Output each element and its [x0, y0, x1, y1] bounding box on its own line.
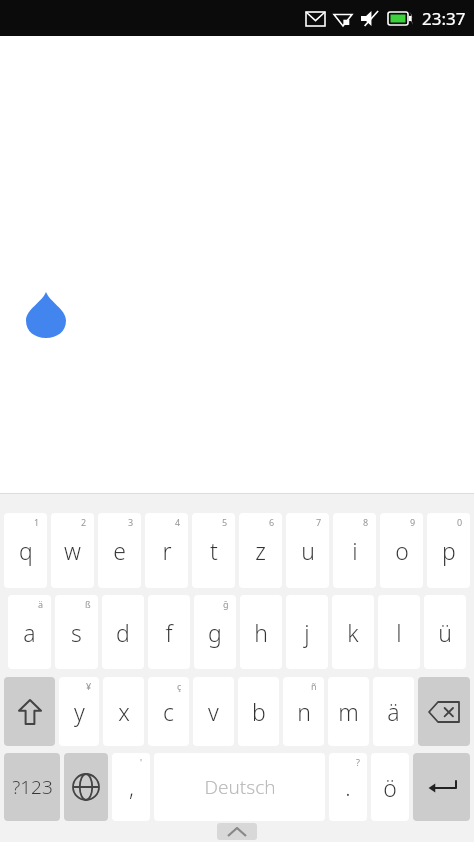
button[interactable]: 1: [4, 513, 47, 588]
button[interactable]: 8: [333, 513, 376, 588]
staticText: ö: [383, 772, 397, 803]
staticText: q: [19, 535, 33, 566]
staticText: y: [74, 696, 85, 727]
staticText: w: [64, 535, 81, 566]
button[interactable]: m: [328, 677, 369, 746]
staticText: k: [347, 617, 359, 648]
button[interactable]: 3: [98, 513, 141, 588]
staticText: ğ: [223, 598, 229, 610]
staticText: 0: [457, 516, 463, 528]
staticText: v: [208, 696, 219, 727]
staticText: 7: [316, 516, 322, 528]
staticText: s: [71, 617, 82, 648]
staticText: p: [442, 535, 456, 566]
staticText: 2: [81, 516, 87, 528]
staticText: n: [297, 696, 311, 727]
button[interactable]: ğ: [194, 595, 236, 669]
staticText: t: [210, 535, 218, 566]
staticText: Deutsch: [204, 774, 276, 800]
button[interactable]: ö: [371, 753, 409, 821]
button[interactable]: ß: [55, 595, 98, 669]
staticText: 23:37: [422, 7, 466, 30]
button[interactable]: 5: [192, 513, 235, 588]
button[interactable]: Change language: [64, 753, 108, 821]
staticText: j: [304, 617, 310, 648]
staticText: ': [140, 756, 143, 768]
staticText: x: [118, 696, 130, 727]
staticText: h: [254, 617, 268, 648]
staticText: i: [352, 535, 358, 566]
button[interactable]: x: [103, 677, 144, 746]
button[interactable]: ç: [148, 677, 189, 746]
button[interactable]: 7: [286, 513, 329, 588]
staticText: a: [23, 617, 36, 648]
staticText: r: [162, 535, 172, 566]
staticText: ç: [177, 680, 182, 692]
staticText: f: [165, 617, 173, 648]
button[interactable]: b: [238, 677, 279, 746]
button[interactable]: Enter: [413, 753, 470, 821]
button[interactable]: h: [240, 595, 282, 669]
button[interactable]: Deutsch: [154, 753, 325, 821]
button[interactable]: j: [286, 595, 328, 669]
button[interactable]: ä: [373, 677, 414, 746]
staticText: 6: [269, 516, 275, 528]
staticText: ?123: [12, 774, 53, 800]
staticText: g: [208, 617, 222, 648]
staticText: o: [395, 535, 409, 566]
button[interactable]: d: [102, 595, 144, 669]
button[interactable]: Hide keyboard: [217, 823, 257, 840]
button[interactable]: v: [193, 677, 234, 746]
button[interactable]: ñ: [283, 677, 324, 746]
staticText: ä: [38, 598, 44, 610]
staticText: ¥: [86, 680, 92, 692]
staticText: 4: [175, 516, 181, 528]
staticText: 8: [363, 516, 369, 528]
staticText: 3: [128, 516, 134, 528]
staticText: ?: [356, 756, 360, 768]
staticText: u: [301, 535, 315, 566]
staticText: ,: [129, 772, 134, 802]
button[interactable]: ¥: [59, 677, 99, 746]
button[interactable]: ü: [424, 595, 466, 669]
button[interactable]: ä: [8, 595, 51, 669]
button[interactable]: ': [112, 753, 150, 821]
button[interactable]: 9: [380, 513, 423, 588]
button[interactable]: 6: [239, 513, 282, 588]
staticText: d: [116, 617, 130, 648]
button[interactable]: l: [378, 595, 420, 669]
staticText: ü: [438, 617, 452, 648]
button[interactable]: ?123: [4, 753, 60, 821]
button[interactable]: f: [148, 595, 190, 669]
staticText: b: [252, 696, 266, 727]
staticText: ß: [85, 598, 91, 610]
button[interactable]: k: [332, 595, 374, 669]
staticText: 5: [222, 516, 228, 528]
button[interactable]: 4: [145, 513, 188, 588]
staticText: ä: [387, 696, 400, 727]
button[interactable]: ?: [329, 753, 367, 821]
staticText: 1: [34, 516, 40, 528]
staticText: .: [345, 772, 351, 802]
button[interactable]: Backspace: [418, 677, 470, 746]
staticText: 9: [410, 516, 416, 528]
button[interactable]: 0: [427, 513, 470, 588]
staticText: z: [255, 535, 266, 566]
button[interactable]: Shift: [4, 677, 55, 746]
button[interactable]: 2: [51, 513, 94, 588]
staticText: m: [338, 696, 359, 727]
staticText: l: [396, 617, 402, 648]
staticText: e: [113, 535, 126, 566]
staticText: c: [163, 696, 174, 727]
staticText: ñ: [311, 680, 317, 692]
